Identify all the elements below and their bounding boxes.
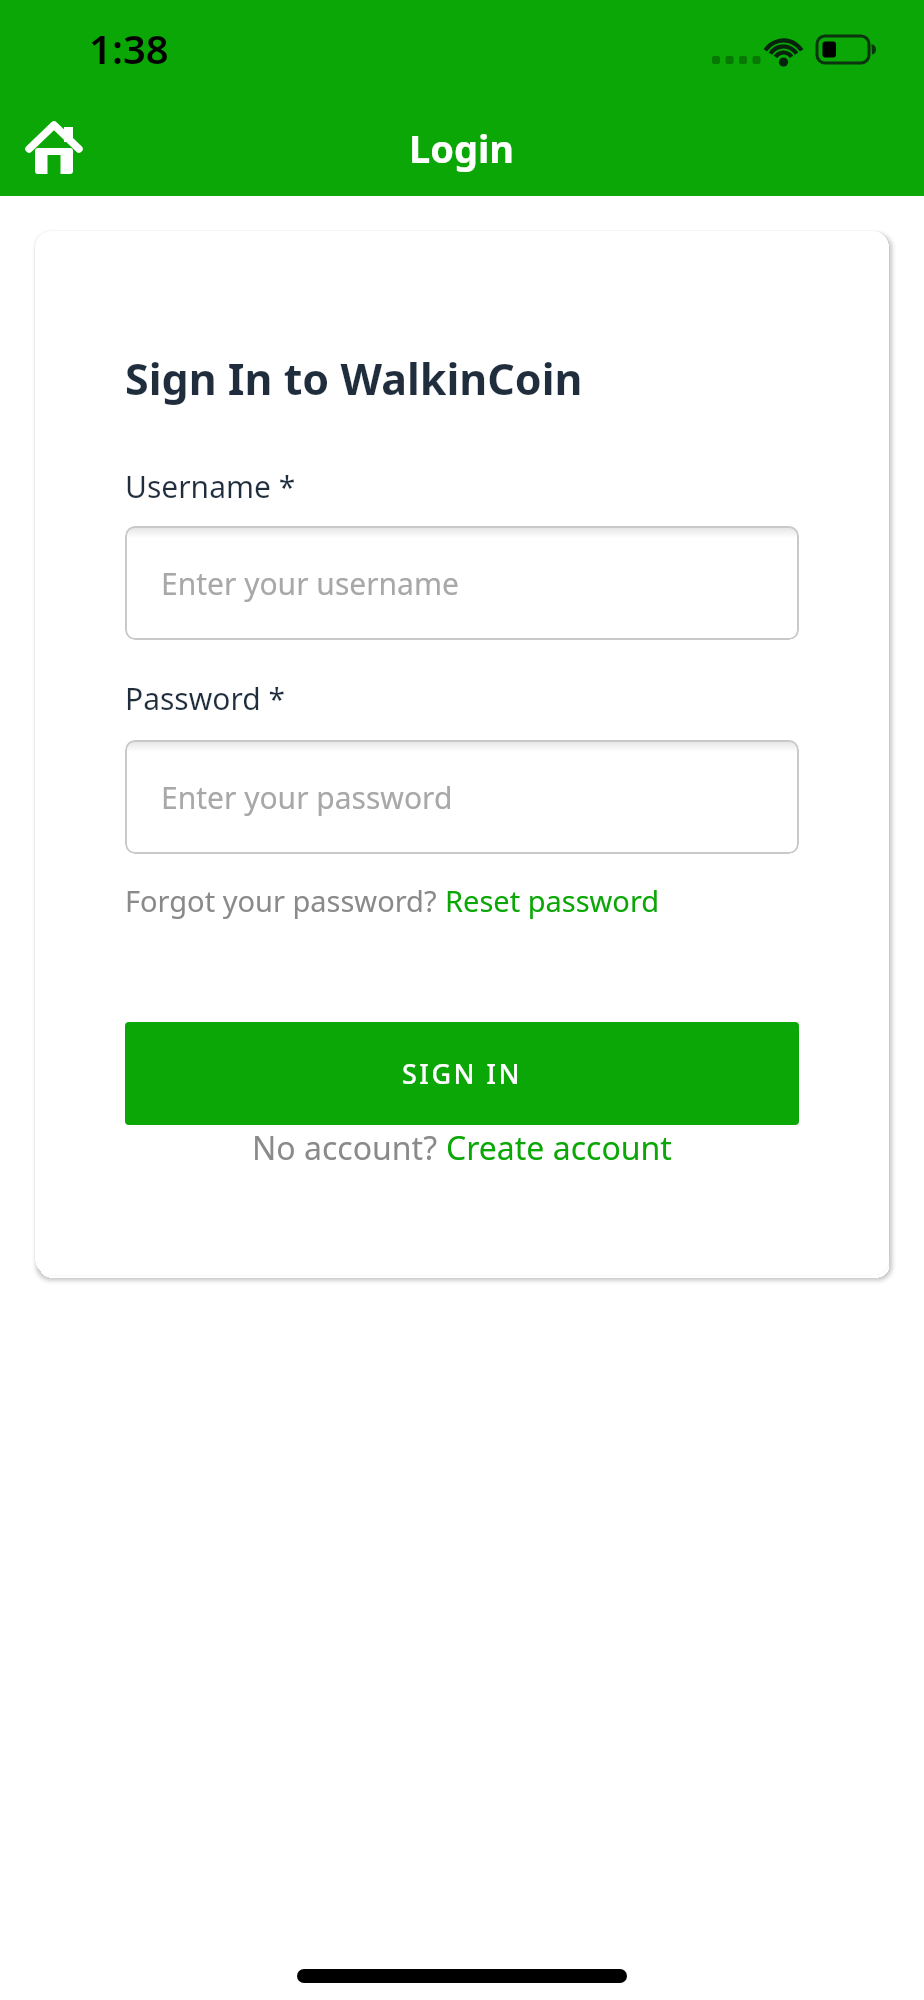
- staticText: Password *: [125, 678, 286, 719]
- staticText: Username *: [125, 466, 296, 507]
- staticText: Enter your password: [161, 777, 453, 818]
- button[interactable]: Reset password: [445, 881, 660, 920]
- staticText: Forgot your password?: [125, 881, 445, 920]
- button[interactable]: [25, 119, 83, 177]
- staticText: No account?: [252, 1126, 446, 1170]
- button[interactable]: SIGN IN: [125, 1022, 799, 1125]
- staticText: SIGN IN: [402, 1055, 523, 1092]
- button[interactable]: Enter your password: [125, 740, 799, 854]
- button[interactable]: Enter your username: [125, 526, 799, 640]
- staticText: 1:38: [89, 21, 169, 75]
- button[interactable]: Create account: [446, 1126, 672, 1170]
- staticText: Login: [409, 122, 515, 174]
- staticText: Sign In to WalkinCoin: [125, 349, 583, 408]
- staticText: Enter your username: [161, 563, 459, 604]
